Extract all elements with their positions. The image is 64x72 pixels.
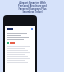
staticText: Personal Brochure and (18, 4, 47, 7)
staticText: Favored Runways Plus (18, 7, 47, 10)
button[interactable] (7, 26, 33, 31)
staticText: Seamless Travel (22, 10, 43, 13)
staticText: Airport Smarter With (19, 1, 46, 4)
